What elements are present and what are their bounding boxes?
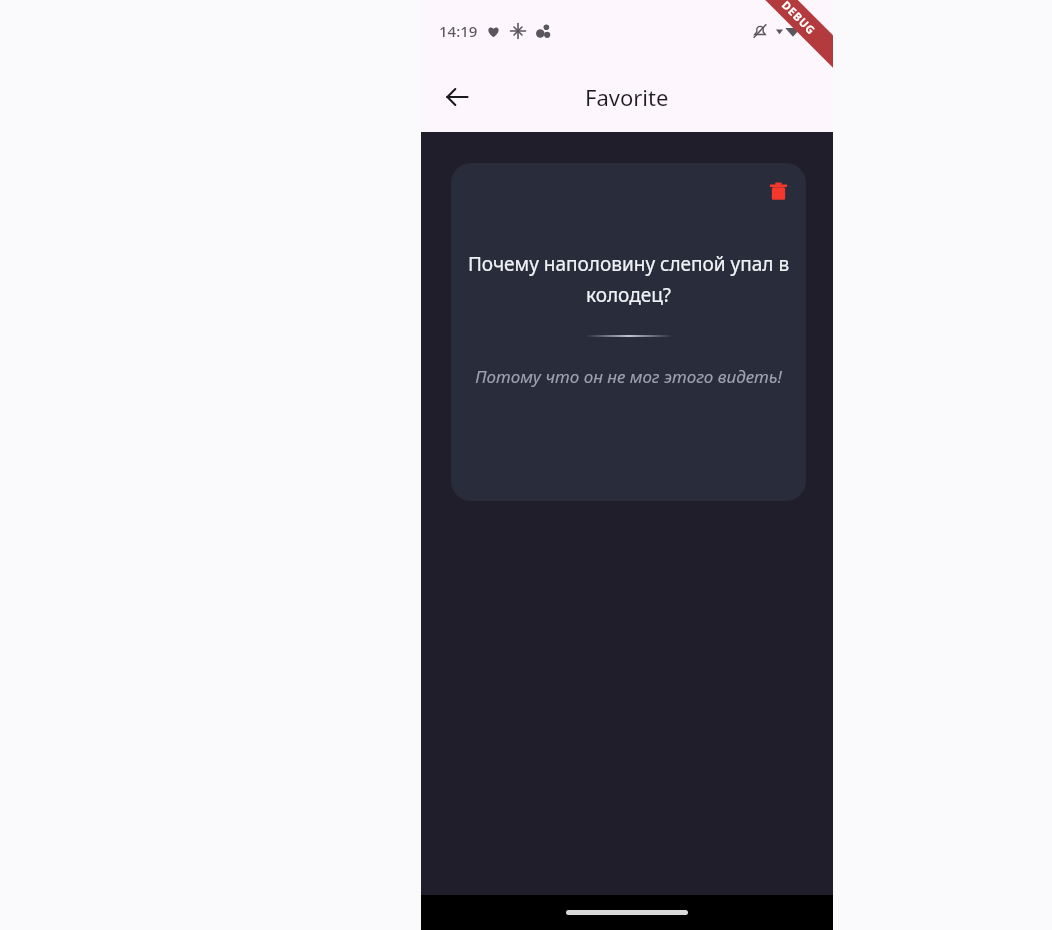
staticText: DEBUG xyxy=(779,0,819,38)
button[interactable]: Delete xyxy=(451,163,806,501)
staticText: Потому что он не мог этого видеть! xyxy=(475,365,782,388)
staticText: Favorite xyxy=(585,82,669,112)
staticText: 14:19 xyxy=(439,21,478,41)
staticText: Почему наполовину слепой упал в колодец? xyxy=(459,251,798,307)
button[interactable]: Back xyxy=(433,73,481,121)
button[interactable]: Delete xyxy=(756,169,800,213)
